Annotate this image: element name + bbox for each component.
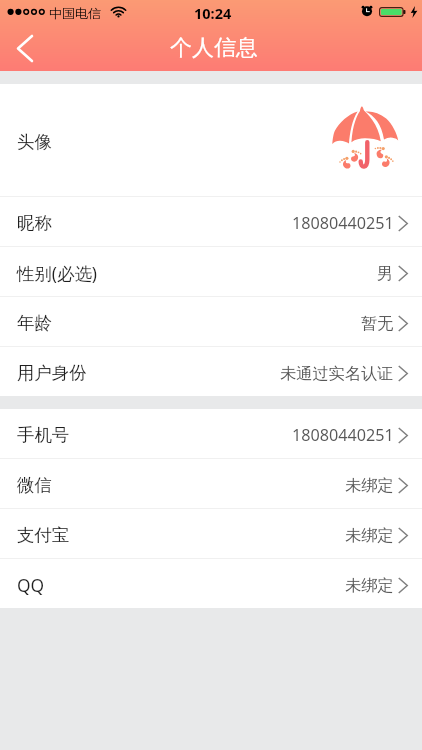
staticText: 微信 [17,474,52,496]
staticText: 中国电信 [49,5,101,21]
staticText: 暂无 [361,313,394,333]
staticText: 昵称 [17,212,52,234]
staticText: 未绑定 [345,525,394,545]
button[interactable]: 支付宝 [0,509,422,558]
staticText: 支付宝 [17,524,70,546]
button[interactable]: 微信 [0,459,422,508]
button[interactable]: Back [10,25,40,71]
button[interactable]: 手机号 [0,409,422,458]
button[interactable]: 昵称 [0,197,422,246]
staticText: 年龄 [17,312,52,334]
staticText: 男 [377,263,394,283]
staticText: 未绑定 [345,575,394,595]
staticText: 18080440251 [292,212,394,234]
button[interactable]: 年龄 [0,297,422,346]
staticText: 用户身份 [17,362,87,384]
staticText: 未绑定 [345,475,394,495]
staticText: 个人信息 [170,34,258,62]
button[interactable]: 头像 [0,84,422,196]
button[interactable]: 用户身份 [0,347,422,396]
staticText: 未通过实名认证 [280,363,394,383]
staticText: 手机号 [17,424,70,446]
staticText: 18080440251 [292,424,394,446]
staticText: 性别(必选) [17,261,97,285]
button[interactable]: 性别(必选) [0,247,422,296]
staticText: QQ [17,573,45,597]
staticText: 头像 [17,131,52,153]
staticText: 10:24 [194,3,232,23]
button[interactable]: QQ [0,559,422,608]
